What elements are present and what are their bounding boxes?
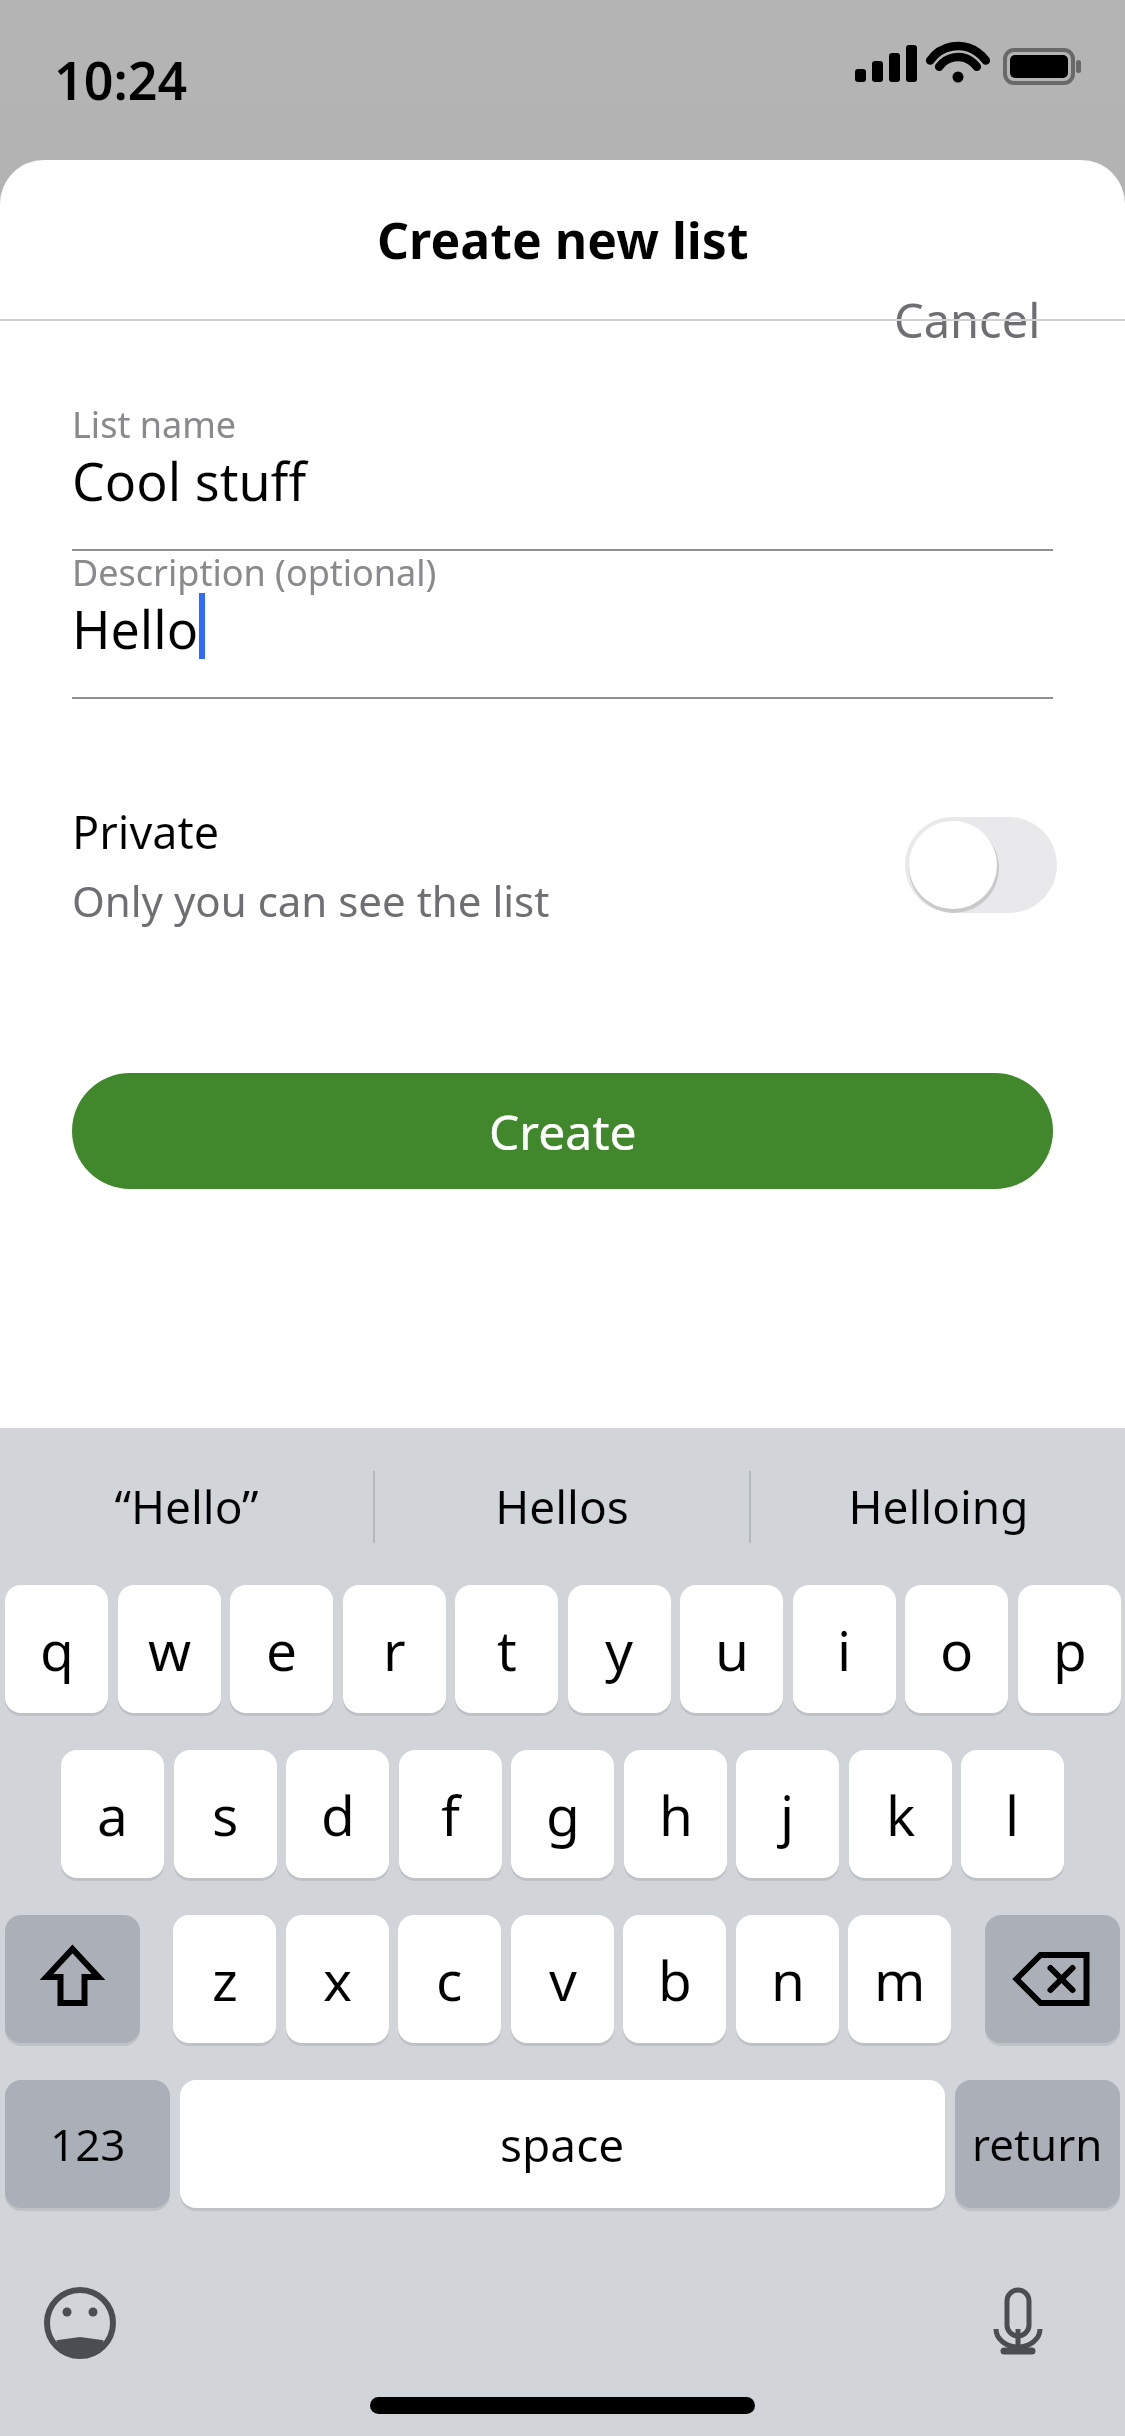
staticText: s [212,1777,239,1852]
staticText: return [972,2114,1103,2174]
staticText: l [1005,1777,1020,1852]
button[interactable]: y [568,1585,671,1713]
staticText: Only you can see the list [72,872,550,929]
button[interactable]: f [399,1750,502,1878]
button[interactable]: Backspace [985,1915,1120,2043]
staticText: Create [489,1099,637,1164]
staticText: m [874,1942,926,2017]
button[interactable]: l [961,1750,1064,1878]
staticText: o [940,1612,974,1687]
staticText: Description (optional) [72,548,437,597]
button[interactable]: Create [72,1073,1053,1189]
button[interactable]: Private [0,785,1125,945]
button[interactable]: k [849,1750,952,1878]
button[interactable]: e [230,1585,333,1713]
staticText: z [212,1942,238,2017]
button[interactable]: m [848,1915,951,2043]
staticText: Hellos [495,1475,629,1538]
button[interactable]: p [1018,1585,1121,1713]
button[interactable]: g [511,1750,614,1878]
button[interactable]: x [286,1915,389,2043]
button[interactable]: u [680,1585,783,1713]
staticText: 123 [50,2114,126,2174]
staticText: e [266,1612,298,1687]
button[interactable]: d [286,1750,389,1878]
staticText: g [546,1777,580,1852]
button[interactable]: b [623,1915,726,2043]
staticText: j [780,1777,795,1852]
button[interactable]: o [905,1585,1008,1713]
button[interactable]: z [173,1915,276,2043]
button[interactable]: 123 [5,2080,170,2208]
staticText: h [659,1777,693,1852]
staticText: Hello [72,593,199,664]
staticText: c [436,1942,463,2017]
staticText: y [605,1612,634,1687]
staticText: Create new list [377,206,749,274]
staticText: 10:24 [54,44,188,115]
button[interactable]: return [955,2080,1120,2208]
button[interactable]: c [398,1915,501,2043]
staticText: i [837,1612,852,1687]
staticText: t [497,1612,517,1687]
button[interactable]: Shift [5,1915,140,2043]
button[interactable]: h [624,1750,727,1878]
button[interactable]: r [343,1585,446,1713]
button[interactable]: Helloing [751,1428,1125,1585]
staticText: b [658,1942,692,2017]
button[interactable]: Dictation [968,2273,1068,2373]
button[interactable]: Cancel [880,260,1055,380]
staticText: u [715,1612,749,1687]
button[interactable]: j [736,1750,839,1878]
button[interactable]: w [118,1585,221,1713]
button[interactable]: “Hello” [0,1428,373,1585]
staticText: w [148,1612,192,1687]
button[interactable]: n [736,1915,839,2043]
staticText: “Hello” [114,1475,259,1538]
staticText: a [97,1777,128,1852]
staticText: Private [72,801,220,862]
staticText: f [441,1777,460,1852]
button[interactable]: s [174,1750,277,1878]
button[interactable]: i [793,1585,896,1713]
staticText: n [771,1942,805,2017]
button[interactable]: space [180,2080,945,2208]
staticText: x [323,1942,353,2017]
button[interactable]: v [511,1915,614,2043]
button[interactable]: Hellos [375,1428,749,1585]
staticText: Helloing [848,1475,1029,1538]
button[interactable]: a [61,1750,164,1878]
button[interactable]: t [455,1585,558,1713]
staticText: q [40,1612,74,1687]
staticText: d [321,1777,355,1852]
button[interactable]: q [5,1585,108,1713]
button[interactable]: Emoji [30,2273,130,2373]
staticText: Cancel [894,288,1041,352]
staticText: Cool stuff [72,445,307,516]
staticText: v [549,1942,577,2017]
staticText: List name [72,400,237,449]
staticText: k [886,1777,916,1852]
staticText: space [500,2113,625,2176]
staticText: r [383,1612,406,1687]
staticText: p [1053,1612,1087,1687]
